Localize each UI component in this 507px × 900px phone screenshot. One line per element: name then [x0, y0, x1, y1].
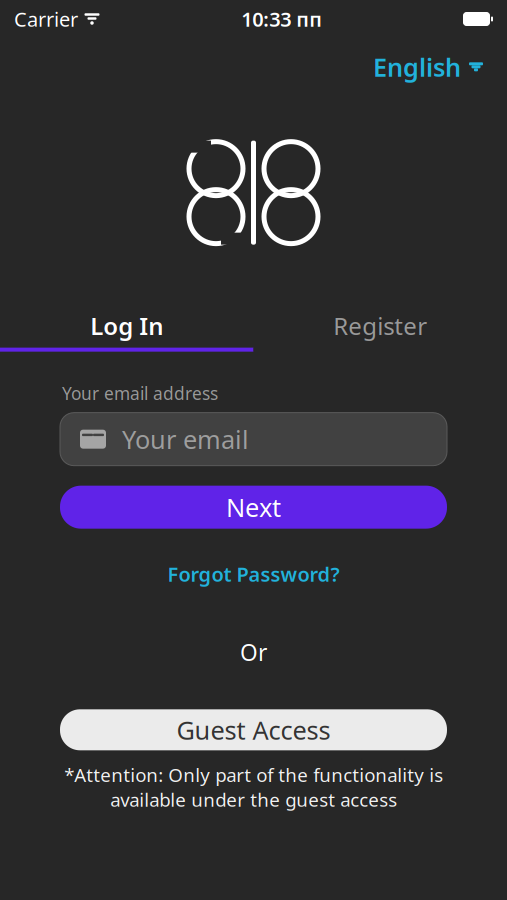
button[interactable]: Log In: [0, 304, 253, 348]
staticText: Carrier: [14, 6, 78, 32]
staticText: Forgot Password?: [167, 561, 339, 587]
button[interactable]: Next: [60, 486, 447, 529]
staticText: Your email address: [62, 382, 218, 405]
staticText: Your email: [122, 422, 249, 456]
button[interactable]: Register: [253, 304, 507, 348]
button[interactable]: English: [367, 44, 489, 90]
staticText: Register: [333, 310, 427, 342]
staticText: English: [373, 50, 461, 84]
staticText: 10:33 пп: [241, 6, 322, 32]
staticText: *Attention: Only part of the functionali…: [64, 762, 443, 812]
button[interactable]: Guest Access: [60, 709, 447, 750]
staticText: Or: [240, 637, 267, 667]
button[interactable]: Forgot Password?: [157, 555, 349, 593]
staticText: Next: [226, 490, 281, 524]
staticText: Guest Access: [176, 713, 330, 747]
staticText: Log In: [90, 310, 163, 342]
